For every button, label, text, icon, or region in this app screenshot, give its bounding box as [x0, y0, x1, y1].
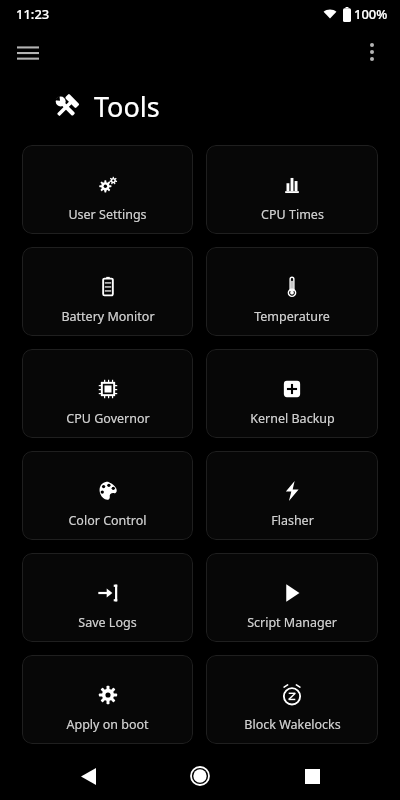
button[interactable]: Apply on boot: [22, 655, 193, 744]
button[interactable]: Save Logs: [22, 553, 193, 642]
staticText: Apply on boot: [66, 716, 149, 733]
staticText: 11:23: [16, 5, 50, 23]
staticText: Color Control: [68, 512, 147, 529]
staticText: Tools: [94, 88, 160, 125]
button[interactable]: Block Wakelocks: [206, 655, 378, 744]
staticText: User Settings: [68, 206, 147, 223]
button[interactable]: Back: [64, 752, 112, 800]
button[interactable]: Battery Monitor: [22, 247, 193, 336]
button[interactable]: CPU Times: [206, 145, 378, 234]
staticText: CPU Governor: [66, 410, 150, 427]
staticText: Script Manager: [247, 614, 337, 631]
staticText: Block Wakelocks: [244, 716, 341, 733]
button[interactable]: Script Manager: [206, 553, 378, 642]
button[interactable]: Color Control: [22, 451, 193, 540]
button[interactable]: CPU Governor: [22, 349, 193, 438]
staticText: Flasher: [271, 512, 314, 529]
button[interactable]: Flasher: [206, 451, 378, 540]
staticText: Temperature: [254, 308, 330, 325]
staticText: Kernel Backup: [250, 410, 335, 427]
staticText: CPU Times: [261, 206, 324, 223]
button[interactable]: Kernel Backup: [206, 349, 378, 438]
button[interactable]: Open navigation menu: [6, 30, 50, 74]
button[interactable]: Recent apps: [288, 752, 336, 800]
staticText: Save Logs: [78, 614, 137, 631]
staticText: 100%: [354, 5, 388, 23]
button[interactable]: User Settings: [22, 145, 193, 234]
button[interactable]: Temperature: [206, 247, 378, 336]
button[interactable]: Home: [176, 752, 224, 800]
button[interactable]: More options: [350, 30, 394, 74]
staticText: Battery Monitor: [61, 308, 155, 325]
